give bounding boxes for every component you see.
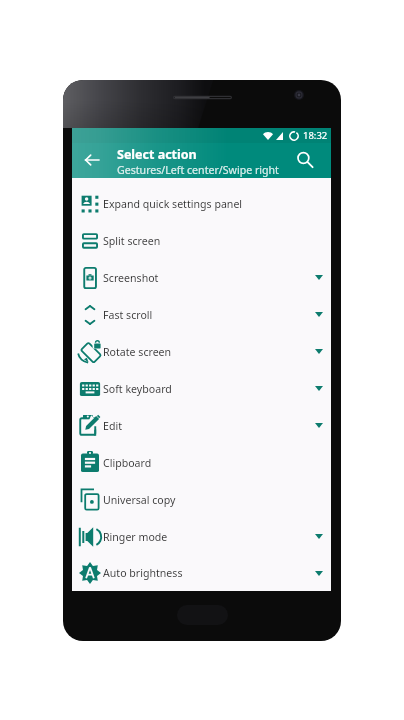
staticText: Fast scroll [103,308,153,322]
button[interactable]: Screenshot [72,259,331,296]
button[interactable]: Fast scroll [72,296,331,333]
button[interactable]: Ringer mode [72,518,331,555]
staticText: Universal copy [103,493,176,507]
button[interactable]: Auto brightness [72,555,331,591]
staticText: Clipboard [103,456,152,470]
staticText: Soft keyboard [103,382,172,396]
staticText: Ringer mode [103,530,168,544]
staticText: Auto brightness [103,566,183,580]
button[interactable]: Search [295,150,315,170]
button[interactable]: Split screen [72,222,331,259]
staticText: 18:32 [303,129,328,142]
staticText: Gestures/Left center/Swipe right [117,163,279,177]
button[interactable]: Soft keyboard [72,370,331,407]
staticText: Expand quick settings panel [103,197,243,211]
staticText: Screenshot [103,271,159,285]
button[interactable]: Rotate screen [72,333,331,370]
button[interactable]: Universal copy [72,481,331,518]
staticText: Edit [103,419,122,433]
staticText: Split screen [103,234,161,248]
button[interactable]: Expand quick settings panel [72,185,331,222]
button[interactable]: Navigate up [81,149,103,171]
button[interactable]: Edit [72,407,331,444]
staticText: Select action [117,146,197,163]
staticText: Rotate screen [103,345,172,359]
button[interactable]: Clipboard [72,444,331,481]
